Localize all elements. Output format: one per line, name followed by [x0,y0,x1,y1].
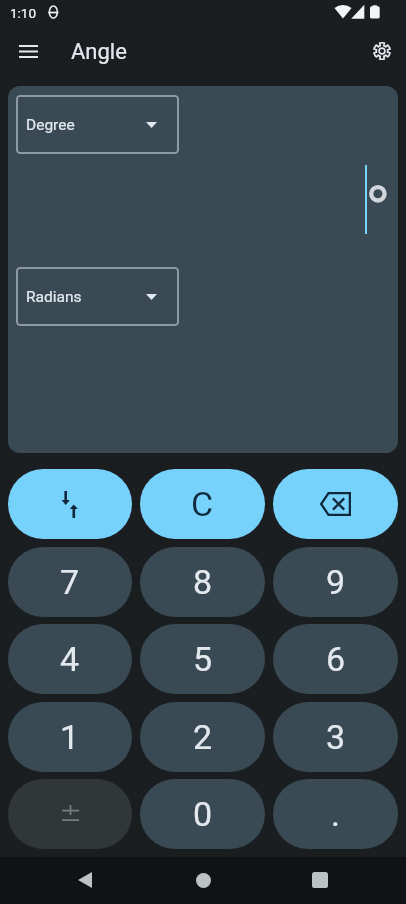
button[interactable]: 3 [273,702,398,772]
button[interactable]: 1 [8,702,132,772]
staticText: 5 [193,639,213,679]
button[interactable]: 6 [273,624,398,694]
button[interactable]: Back [65,860,105,900]
button[interactable]: 2 [140,702,265,772]
button[interactable]: 0 [140,779,265,849]
button[interactable]: Home [183,860,223,900]
button[interactable]: Settings [362,31,402,71]
button[interactable]: Degree [16,95,179,154]
staticText: 8 [193,562,213,602]
staticText: 4 [60,639,80,679]
button[interactable]: 8 [140,547,265,617]
button[interactable]: C [140,469,265,539]
staticText: Degree [26,116,75,134]
staticText: . [331,794,340,834]
button[interactable]: Swap units [8,469,132,539]
staticText: 2 [193,717,213,757]
staticText: 7 [60,562,80,602]
staticText: 0 [193,794,213,834]
button[interactable]: Change sign [8,779,132,849]
button[interactable]: 4 [8,624,132,694]
button[interactable]: 7 [8,547,132,617]
button[interactable]: Menu [8,31,48,71]
button[interactable]: . [273,779,398,849]
staticText: 1 [60,717,80,757]
button[interactable]: 9 [273,547,398,617]
button[interactable]: Radians [16,267,179,326]
button[interactable]: Recent apps [300,860,340,900]
staticText: Angle [71,39,127,65]
staticText: Radians [26,288,82,306]
staticText: 6 [326,639,346,679]
button[interactable]: Backspace [273,469,398,539]
staticText: C [191,484,214,524]
button[interactable]: 5 [140,624,265,694]
staticText: 1:10 [10,5,37,21]
staticText: 3 [326,717,346,757]
staticText: 9 [326,562,346,602]
